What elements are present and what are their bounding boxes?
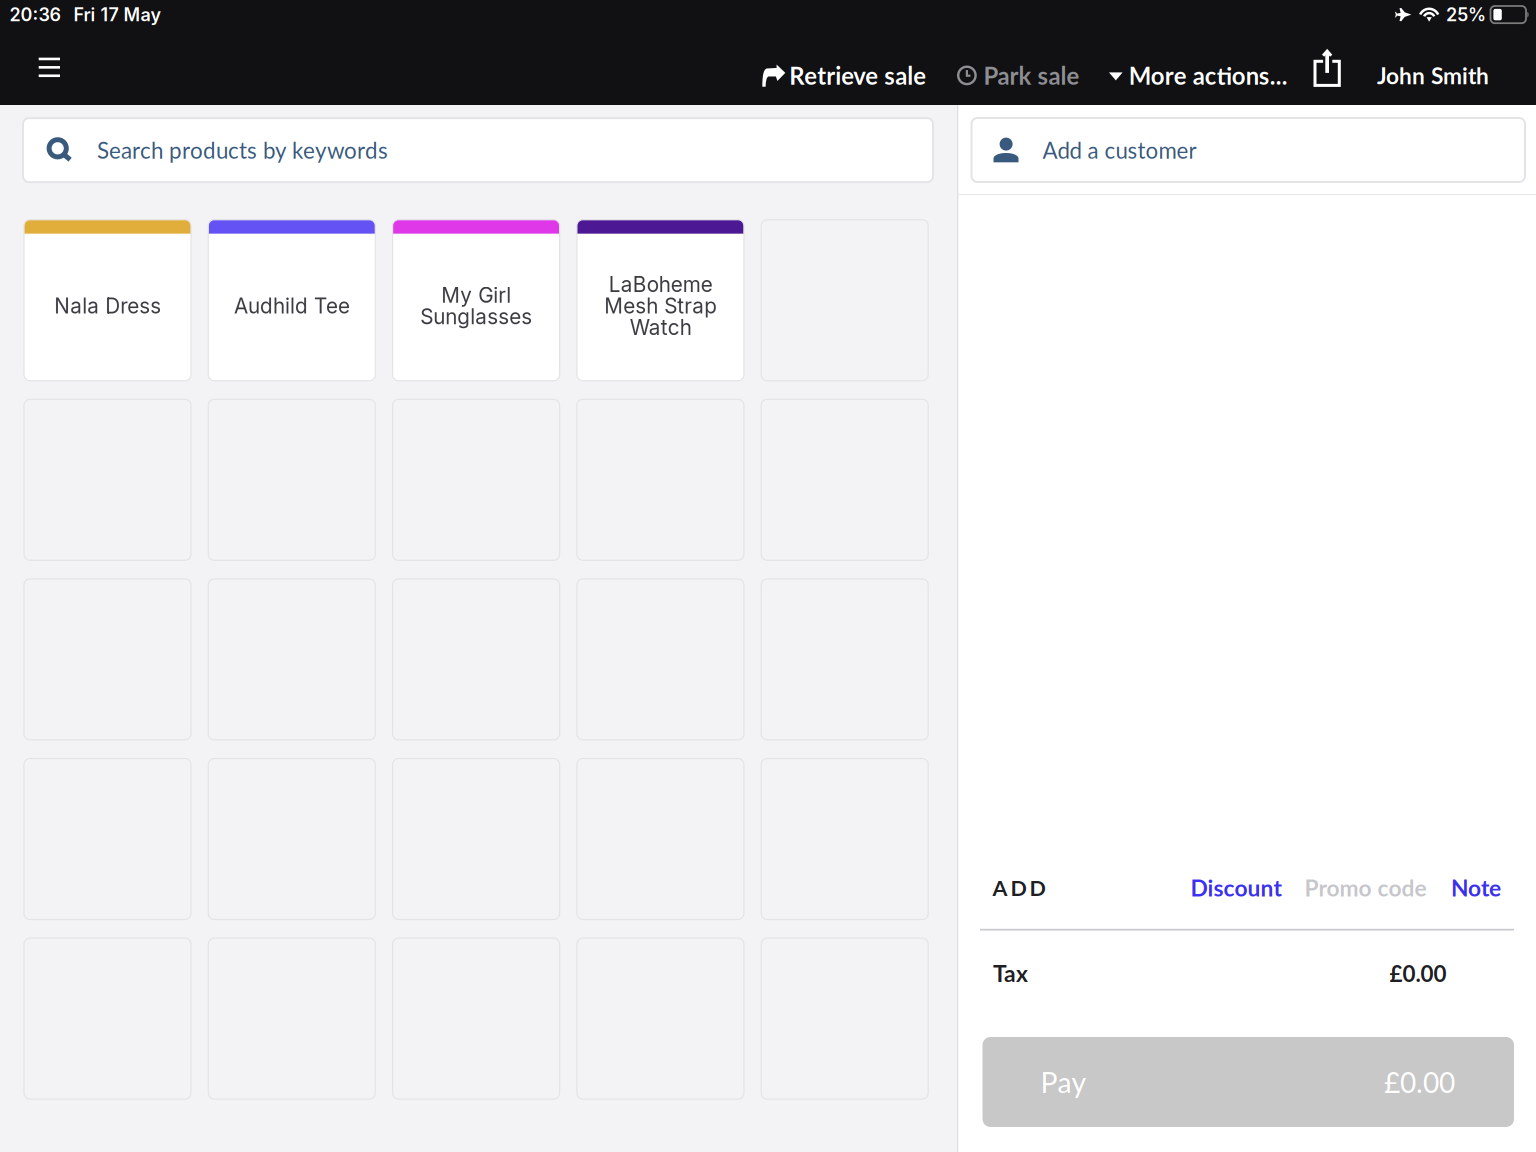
staticText: Nala Dress [54, 293, 161, 318]
button[interactable]: More actions... [1107, 56, 1288, 85]
staticText: Fri 17 May [73, 4, 161, 25]
button[interactable]: Promo code [1304, 874, 1426, 901]
button[interactable]: Retrieve sale [759, 56, 926, 85]
button[interactable]: Park sale [953, 56, 1078, 85]
button[interactable]: Pay [982, 1037, 1514, 1127]
staticText: John Smith [1377, 62, 1489, 89]
staticText: Promo code [1304, 874, 1426, 901]
staticText: Tax [993, 959, 1028, 987]
button[interactable]: Discount [1190, 874, 1281, 901]
staticText: Note [1451, 874, 1501, 901]
button[interactable]: Audhild Tee [208, 220, 375, 381]
staticText: Park sale [984, 61, 1080, 90]
staticText: Search products by keywords [97, 137, 388, 164]
button[interactable]: Share [1313, 51, 1340, 89]
button[interactable]: Search products by keywords [23, 118, 933, 182]
button[interactable]: Note [1451, 874, 1501, 901]
staticText: ADD [992, 875, 1045, 900]
staticText: Retrieve sale [789, 61, 926, 90]
staticText: Discount [1190, 874, 1281, 901]
button[interactable]: Nala Dress [24, 220, 191, 381]
staticText: £0.00 [1384, 1065, 1455, 1099]
button[interactable]: My Girl Sunglasses [393, 220, 560, 381]
staticText: LaBoheme Mesh Strap Watch [604, 272, 717, 340]
button[interactable]: LaBoheme Mesh Strap Watch [577, 220, 744, 381]
staticText: More actions... [1129, 61, 1288, 90]
staticText: My Girl Sunglasses [420, 283, 532, 329]
staticText: 25% [1446, 4, 1486, 25]
button[interactable]: Add a customer [971, 118, 1525, 182]
staticText: Add a customer [1042, 137, 1196, 163]
staticText: Audhild Tee [234, 293, 350, 318]
button[interactable]: John Smith [1377, 57, 1489, 84]
button[interactable]: Menu [39, 60, 60, 80]
staticText: 20:36 [9, 4, 61, 25]
staticText: £0.00 [1389, 960, 1446, 987]
staticText: Pay [1040, 1065, 1086, 1099]
